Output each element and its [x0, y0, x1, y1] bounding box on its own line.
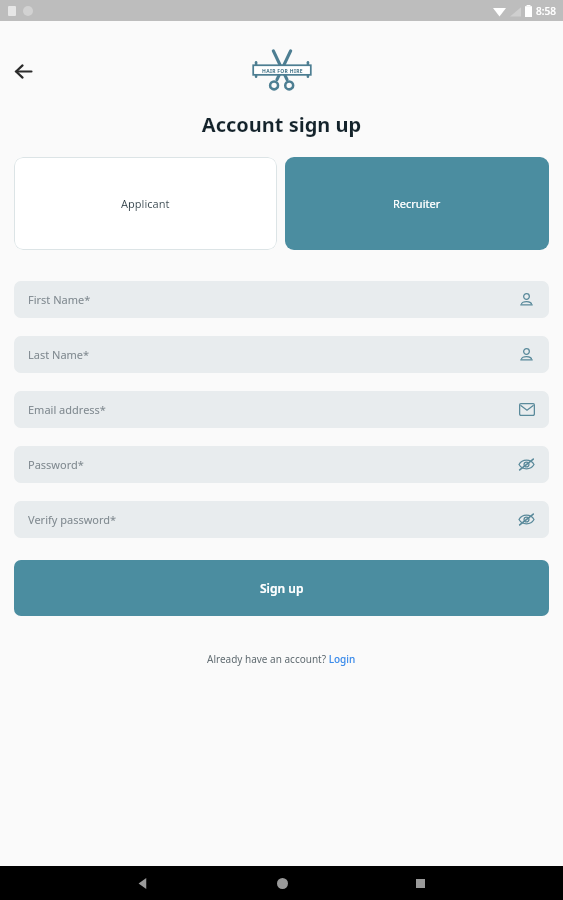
button[interactable]: Recent apps [407, 870, 433, 896]
button[interactable]: Home [269, 870, 295, 896]
staticText: Password* [28, 457, 518, 472]
staticText: Last Name* [28, 347, 518, 362]
button[interactable]: Back [9, 57, 37, 85]
staticText: 8:58 [536, 4, 556, 18]
button[interactable]: Last Name* [14, 336, 549, 373]
staticText: Applicant [121, 196, 170, 211]
staticText: HAIR FOR HIRE [262, 68, 303, 75]
staticText: Sign up [260, 580, 304, 596]
button[interactable]: Verify password* [14, 501, 549, 538]
button[interactable]: Password* [14, 446, 549, 483]
staticText: First Name* [28, 292, 518, 307]
button[interactable]: Already have an account? Login [207, 652, 356, 666]
staticText: Account sign up [0, 111, 563, 138]
button[interactable]: Email address* [14, 391, 549, 428]
button[interactable]: Applicant [14, 157, 277, 250]
staticText: Email address* [28, 402, 518, 417]
button[interactable]: Recruiter [285, 157, 549, 250]
staticText: Verify password* [28, 512, 518, 527]
button[interactable]: Back [130, 870, 156, 896]
staticText: Recruiter [393, 196, 441, 211]
staticText: Already have an account? Login [207, 652, 356, 666]
button[interactable]: Sign up [14, 560, 549, 616]
button[interactable]: First Name* [14, 281, 549, 318]
